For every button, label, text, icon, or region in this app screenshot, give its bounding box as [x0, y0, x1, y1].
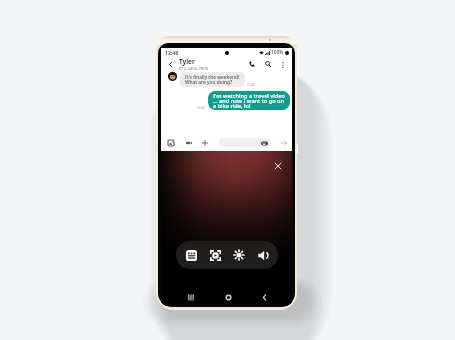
staticText: 12:48	[165, 49, 179, 56]
staticText: 12:46	[197, 106, 206, 110]
button[interactable]: Recents	[184, 290, 198, 304]
button[interactable]: Tyler	[179, 57, 209, 71]
staticText: 100%	[271, 49, 284, 56]
button[interactable]: Search	[262, 58, 274, 70]
staticText: 12:45	[247, 83, 256, 87]
button[interactable]: Pop-up view	[206, 246, 224, 264]
staticText: I'm watching a travel video ... and now …	[213, 92, 285, 109]
button[interactable]: Captions	[182, 246, 200, 264]
staticText: 012-3456-7890	[179, 66, 209, 71]
button[interactable]: Volume	[254, 246, 272, 264]
button[interactable]: Home	[221, 290, 235, 304]
button[interactable]: Stickers	[258, 137, 270, 149]
staticText: Tyler	[179, 57, 195, 66]
button[interactable]: Back	[257, 290, 271, 304]
staticText: It's finally the weekend! What are you d…	[185, 74, 240, 85]
button[interactable]	[219, 138, 271, 147]
button[interactable]: Close	[272, 160, 284, 172]
button[interactable]: Call	[246, 58, 258, 70]
button[interactable]: Send	[278, 137, 290, 149]
button[interactable]: Gallery	[165, 137, 177, 149]
button[interactable]: Video	[183, 137, 195, 149]
button[interactable]: Brightness	[230, 246, 248, 264]
button[interactable]: Add	[199, 137, 211, 149]
button[interactable]: More options	[277, 59, 288, 70]
button[interactable]: Back	[165, 59, 176, 70]
